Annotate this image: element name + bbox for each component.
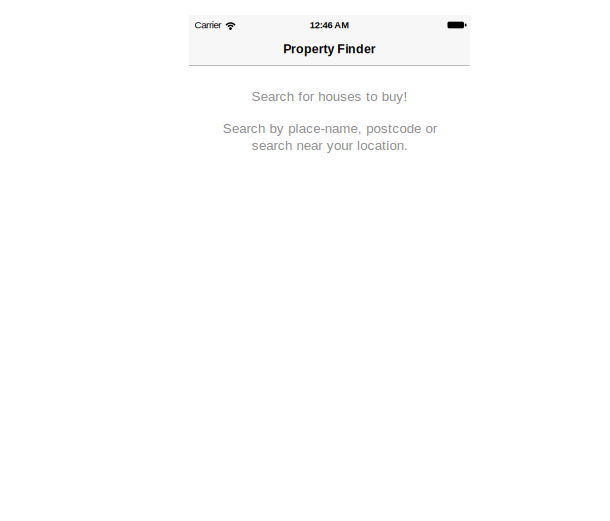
staticText: Property Finder [283, 42, 376, 56]
staticText: Search for houses to buy! [251, 88, 407, 105]
staticText: Carrier [194, 20, 221, 30]
staticText: Search by place-name, postcode or search… [222, 120, 436, 154]
staticText: 12:46 AM [310, 20, 349, 30]
